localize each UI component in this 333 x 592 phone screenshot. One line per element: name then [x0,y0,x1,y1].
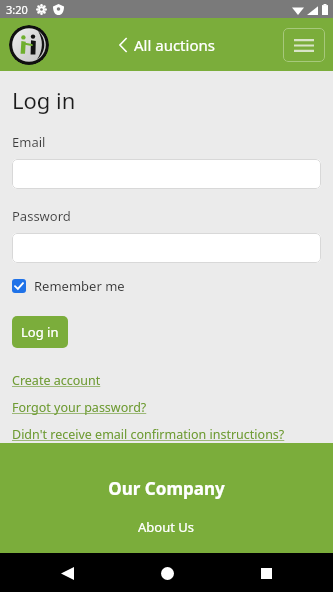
staticText: Forgot your password? [12,399,147,416]
button[interactable]: Recent apps [251,558,281,588]
staticText: Log in [21,323,59,341]
staticText: Our Company [108,477,225,500]
staticText: 3:20 [6,2,28,17]
staticText: Log in [12,85,76,115]
button[interactable]: Create account [12,372,101,389]
button[interactable] [12,233,321,263]
button[interactable]: Menu [283,28,325,62]
button[interactable] [12,159,321,189]
button[interactable]: Forgot your password? [12,399,147,416]
button[interactable]: Home logo [9,25,49,65]
button[interactable]: Didn't receive email confirmation instru… [12,426,285,443]
staticText: Password [12,207,71,225]
button[interactable]: Log in [12,316,68,348]
staticText: Didn't receive email confirmation instru… [12,426,285,443]
staticText: All auctions [134,35,215,55]
staticText: Email [12,133,46,151]
staticText: Remember me [34,277,125,295]
button[interactable]: All auctions [113,31,221,59]
button[interactable]: Remember me [12,275,125,297]
staticText: Create account [12,372,101,389]
staticText: About Us [138,518,195,536]
button[interactable]: About Us [138,518,195,536]
button[interactable]: Back [52,558,82,588]
button[interactable]: Home [152,558,182,588]
